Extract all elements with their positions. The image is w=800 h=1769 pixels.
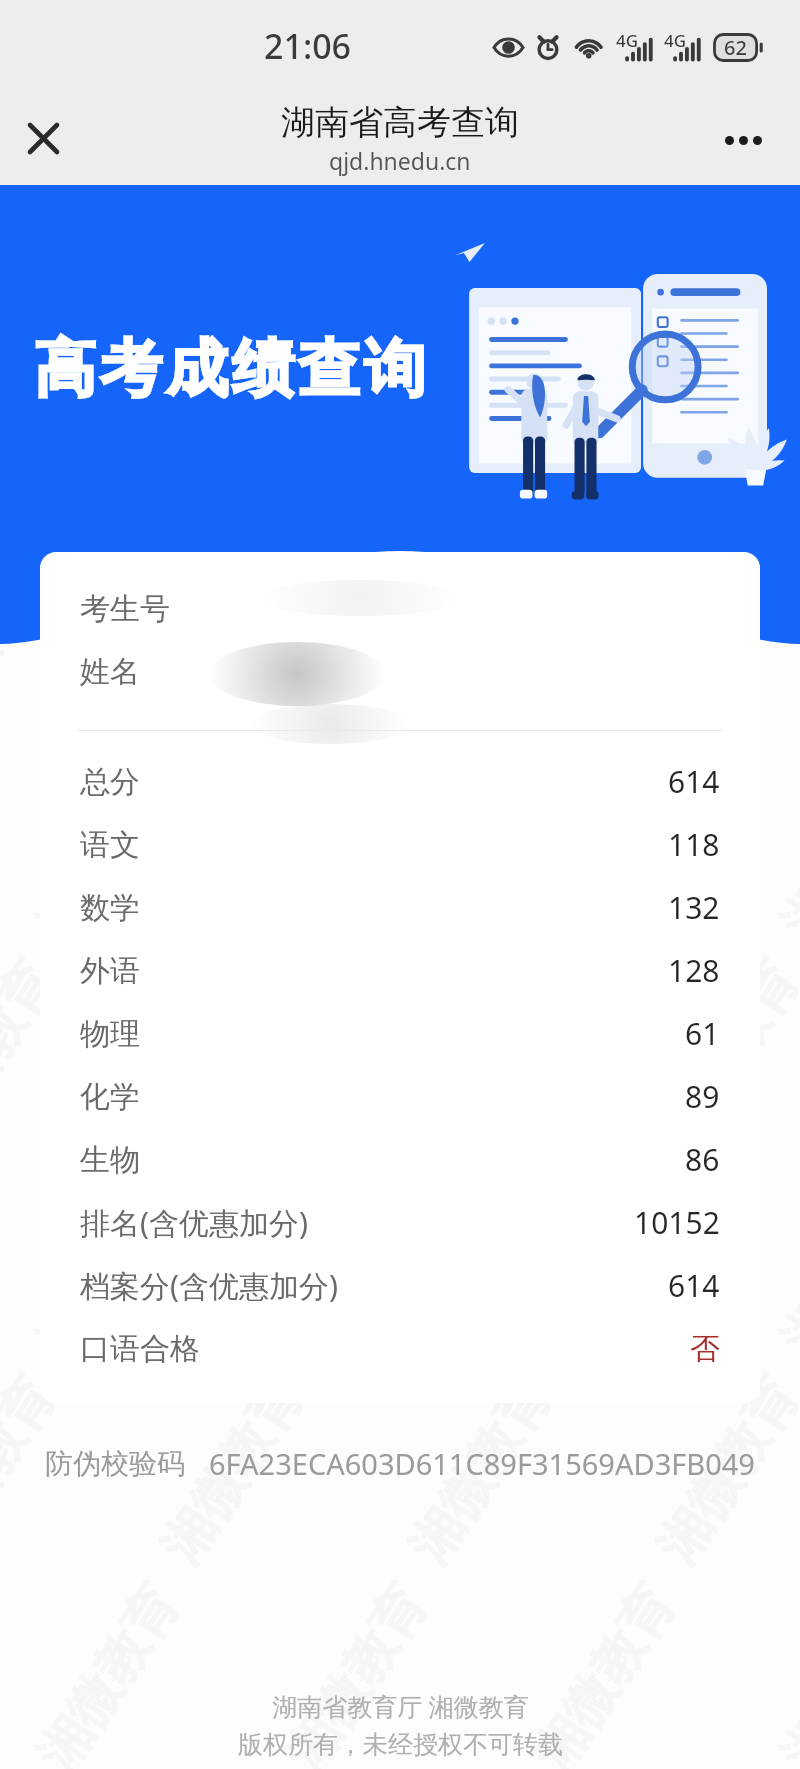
staticText: 湘微教育 (644, 534, 800, 744)
staticText: 湘微教育 (272, 1574, 440, 1769)
staticText: 21:06 (264, 23, 352, 69)
staticText: 姓名 (80, 653, 140, 691)
button[interactable]: Close (14, 108, 72, 166)
staticText: 614 (668, 761, 720, 802)
button[interactable]: 口语合格 (40, 1317, 760, 1380)
staticText: 湘微教育 (24, 742, 192, 952)
staticText: 版权所有，未经授权不可转载 (238, 1729, 563, 1760)
staticText: 湖南省教育厅 湘微教育 (272, 1689, 529, 1723)
staticText: 总分 (80, 763, 140, 801)
staticText: 湘微教育 (644, 118, 800, 328)
button[interactable]: 排名(含优惠加分) (40, 1191, 760, 1254)
button[interactable]: 考生号 (40, 577, 760, 640)
staticText: 湘微教育 (396, 1366, 564, 1576)
staticText: 61 (685, 1013, 720, 1054)
staticText: 62 (724, 34, 747, 61)
staticText: 物理 (80, 1015, 140, 1053)
button[interactable]: 总分 (40, 750, 760, 813)
staticText: 湘微教育 (0, 534, 68, 744)
staticText: 湘微教育 (24, 326, 192, 536)
staticText: 湘微教育 (148, 118, 316, 328)
staticText: 湘微教育 (644, 950, 800, 1160)
staticText: 89 (685, 1076, 720, 1117)
staticText: 118 (668, 824, 720, 865)
button[interactable]: More options (714, 108, 772, 166)
staticText: 湘微教育 (768, 326, 800, 536)
staticText: 湘微教育 (520, 1158, 688, 1368)
button[interactable]: 数学 (40, 876, 760, 939)
staticText: 128 (668, 950, 720, 991)
staticText: 614 (668, 1265, 720, 1306)
staticText: 口语合格 (80, 1330, 200, 1368)
staticText: 生物 (80, 1141, 140, 1179)
staticText: 档案分(含优惠加分) (80, 1265, 338, 1306)
button[interactable]: 档案分(含优惠加分) (40, 1254, 760, 1317)
staticText: 湘微教育 (0, 1366, 68, 1576)
button[interactable]: 生物 (40, 1128, 760, 1191)
staticText: 考生号 (80, 590, 170, 628)
staticText: 湘微教育 (520, 1574, 688, 1769)
staticText: 湘微教育 (272, 1158, 440, 1368)
staticText: 外语 (80, 952, 140, 990)
staticText: 6FA23ECA603D611C89F31569AD3FB049 (209, 1444, 755, 1483)
staticText: 语文 (80, 826, 140, 864)
staticText: 4G (616, 29, 639, 52)
staticText: 湘微教育 (396, 534, 564, 744)
staticText: 防伪校验码 (45, 1446, 185, 1481)
staticText: 湘微教育 (272, 326, 440, 536)
staticText: 湘微教育 (0, 118, 68, 328)
staticText: 湖南省高考查询 (281, 101, 519, 144)
button[interactable]: 化学 (40, 1065, 760, 1128)
button[interactable]: 外语 (40, 939, 760, 1002)
staticText: 湘微教育 (520, 742, 688, 952)
staticText: 否 (690, 1330, 720, 1368)
staticText: qjd.hnedu.cn (329, 145, 471, 176)
staticText: 湘微教育 (24, 1158, 192, 1368)
staticText: 湘微教育 (148, 1366, 316, 1576)
staticText: 10152 (634, 1202, 720, 1243)
button[interactable]: 姓名 (40, 640, 760, 703)
button[interactable]: 语文 (40, 813, 760, 876)
staticText: 4G (664, 29, 687, 52)
staticText: 湘微教育 (520, 326, 688, 536)
staticText: 高考成绩查询 (32, 330, 428, 408)
staticText: 湘微教育 (148, 534, 316, 744)
staticText: 化学 (80, 1078, 140, 1116)
staticText: 排名(含优惠加分) (80, 1202, 308, 1243)
staticText: 132 (668, 887, 720, 928)
staticText: 86 (685, 1139, 720, 1180)
staticText: 湘微教育 (644, 1366, 800, 1576)
button[interactable]: 物理 (40, 1002, 760, 1065)
staticText: 数学 (80, 889, 140, 927)
staticText: 湘微教育 (396, 118, 564, 328)
